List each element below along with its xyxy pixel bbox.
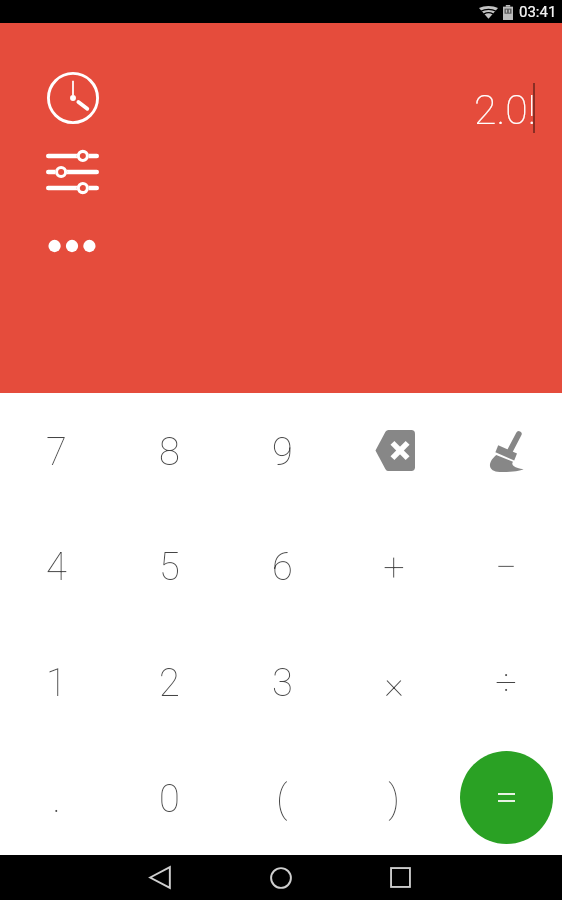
button[interactable]: Clear — [450, 393, 562, 508]
button[interactable]: 2 — [113, 623, 226, 739]
staticText: . — [52, 777, 61, 822]
button[interactable]: 4 — [0, 508, 113, 623]
staticText: 7 — [46, 430, 67, 475]
button[interactable]: 3 — [226, 623, 338, 739]
staticText: ÷ — [495, 661, 517, 706]
button[interactable]: ÷ — [450, 623, 562, 739]
button[interactable]: 0 — [113, 739, 226, 855]
button[interactable]: Back — [132, 855, 188, 900]
staticText: × — [384, 661, 404, 706]
staticText: 4 — [46, 545, 67, 590]
staticText: 5 — [159, 545, 180, 590]
button[interactable]: 9 — [226, 393, 338, 508]
button[interactable]: History — [47, 72, 99, 124]
button[interactable]: Home — [253, 855, 309, 900]
button[interactable]: Equals — [460, 751, 553, 844]
button[interactable]: 6 — [226, 508, 338, 623]
button[interactable]: 5 — [113, 508, 226, 623]
staticText: 1 — [46, 661, 67, 706]
staticText: 0 — [159, 777, 180, 822]
staticText: 2.0! — [474, 86, 536, 134]
button[interactable]: Settings — [46, 148, 99, 196]
button[interactable]: ) — [338, 739, 450, 855]
staticText: 03:41 — [519, 3, 557, 21]
button[interactable]: ( — [226, 739, 338, 855]
button[interactable]: × — [338, 623, 450, 739]
button[interactable]: 7 — [0, 393, 113, 508]
button[interactable]: + — [338, 508, 450, 623]
button[interactable]: − — [450, 508, 562, 623]
staticText: ( — [276, 777, 288, 822]
staticText: ) — [388, 777, 400, 822]
button[interactable]: More options — [46, 232, 98, 260]
staticText: 8 — [159, 430, 180, 475]
button[interactable]: 1 — [0, 623, 113, 739]
staticText: 6 — [272, 545, 293, 590]
staticText: 2 — [159, 661, 180, 706]
staticText: − — [495, 545, 517, 590]
staticText: + — [383, 545, 405, 590]
button[interactable]: Recents — [372, 855, 428, 900]
button[interactable]: Backspace — [338, 393, 450, 508]
staticText: 3 — [272, 661, 293, 706]
button[interactable]: 8 — [113, 393, 226, 508]
staticText: 9 — [272, 430, 293, 475]
